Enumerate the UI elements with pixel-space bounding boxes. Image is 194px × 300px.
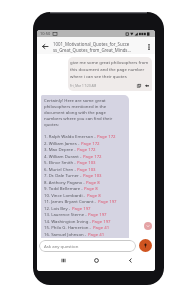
button[interactable]: Back (122, 254, 138, 266)
staticText: 5. Elinor Smith - (44, 159, 77, 165)
staticText: 2. William James - (44, 140, 81, 146)
staticText: Page 103 (83, 172, 102, 178)
staticText: Page 8 (84, 185, 98, 191)
staticText: 13. Laurence Sterne - (44, 211, 88, 217)
staticText: Page 197 (98, 198, 117, 204)
button[interactable]: Back (37, 37, 53, 54)
staticText: Page 197 (92, 218, 111, 224)
staticText: Page 103 (77, 166, 96, 172)
staticText: Page 8 (87, 192, 101, 198)
staticText: 3. Max Depree - (44, 146, 77, 152)
button[interactable]: give me some great philosophers from thi… (68, 57, 152, 91)
staticText: give me some great philosophers from thi… (70, 59, 149, 79)
staticText: 1001_Motivational_Quotes_for_Succe (53, 41, 130, 47)
button[interactable]: More options (142, 37, 155, 54)
staticText: Page 172 (81, 140, 100, 146)
staticText: 9. Todd Bellemare - (44, 185, 84, 191)
staticText: Page 103 (77, 159, 96, 165)
button[interactable]: Voice input (139, 239, 152, 252)
staticText: Page 197 (88, 211, 107, 217)
staticText: Page 172 (83, 153, 102, 159)
staticText: 15. Philo G. Hamerton - (44, 224, 93, 230)
staticText: Page 41 (88, 231, 105, 237)
button[interactable]: Recents (55, 254, 71, 266)
staticText: 16. Samuel Johnson - (44, 231, 88, 237)
staticText: 10:50 (40, 31, 51, 36)
staticText: 11. James Bryant Conant - (44, 198, 98, 204)
staticText: Page 197 (72, 205, 91, 211)
staticText: Page 172 (77, 146, 96, 152)
button[interactable]: Ask any question (39, 240, 136, 252)
staticText: Certainly! Here are some great philosoph… (44, 97, 113, 127)
staticText: 14. Washington Irving - (44, 218, 92, 224)
staticText: 8. Anthony Pagano - (44, 179, 86, 185)
button[interactable]: Home (88, 254, 104, 266)
staticText: Ask any question (44, 243, 79, 249)
button[interactable]: Certainly! Here are some great philosoph… (41, 95, 129, 248)
staticText: Fri, Mar 1 7:20 AM (70, 84, 97, 88)
staticText: 7. Dr. Dale Turner - (44, 172, 83, 178)
staticText: 1. Ralph Waldo Emerson - (44, 133, 97, 139)
staticText: 12. Lois Bey - (44, 205, 72, 211)
staticText: ss_Great_Quotes_from_Great_Minds... (53, 47, 131, 53)
staticText: Page 172 (97, 133, 116, 139)
staticText: 6. Muriel Chen - (44, 166, 77, 172)
staticText: Page 41 (93, 224, 110, 230)
staticText: 10. Vince Lombardi - (44, 192, 87, 198)
staticText: 4. William Durant - (44, 153, 83, 159)
staticText: Page 8 (86, 179, 100, 185)
button[interactable]: Scroll to bottom (144, 222, 152, 230)
